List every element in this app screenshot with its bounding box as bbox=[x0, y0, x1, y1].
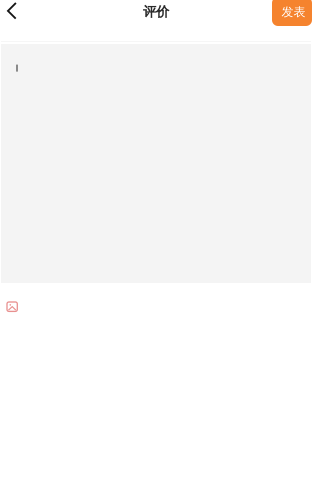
button[interactable]: 返回 bbox=[0, 0, 33, 36]
button[interactable]: 发表 bbox=[272, 0, 312, 26]
staticText: 评价 bbox=[143, 3, 169, 20]
button[interactable]: 添加图片 bbox=[1, 295, 27, 321]
staticText: 发表 bbox=[281, 5, 305, 19]
